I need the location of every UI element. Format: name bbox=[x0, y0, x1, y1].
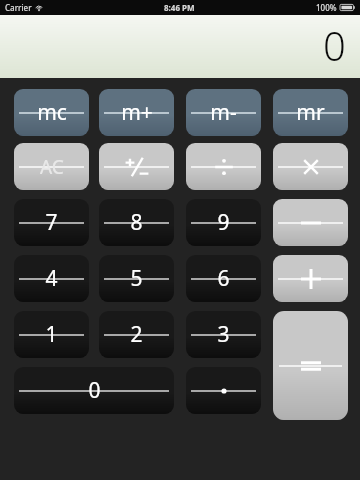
button[interactable]: 3 bbox=[186, 311, 261, 358]
staticText: 3 bbox=[217, 320, 230, 349]
button[interactable]: Divide bbox=[186, 143, 261, 190]
staticText: mr bbox=[296, 98, 325, 127]
button[interactable]: 2 bbox=[99, 311, 174, 358]
staticText: AC bbox=[40, 154, 64, 180]
staticText: m+ bbox=[121, 98, 153, 127]
staticText: mc bbox=[37, 98, 67, 127]
button[interactable]: 9 bbox=[186, 199, 261, 246]
button[interactable]: 6 bbox=[186, 255, 261, 302]
staticText: 5 bbox=[130, 264, 143, 293]
staticText: 0 bbox=[323, 18, 346, 72]
staticText: 100% bbox=[316, 2, 337, 13]
staticText: 6 bbox=[217, 264, 230, 293]
button[interactable]: 7 bbox=[14, 199, 89, 246]
button[interactable]: 0 bbox=[14, 367, 174, 414]
button[interactable]: Multiply bbox=[273, 143, 348, 190]
button[interactable]: All clear bbox=[14, 143, 89, 190]
button[interactable]: 5 bbox=[99, 255, 174, 302]
button[interactable]: mr bbox=[273, 89, 348, 136]
staticText: 1 bbox=[45, 320, 58, 349]
button[interactable]: m+ bbox=[99, 89, 174, 136]
button[interactable]: 1 bbox=[14, 311, 89, 358]
button[interactable]: Add bbox=[273, 255, 348, 302]
staticText: 8:46 PM bbox=[164, 2, 195, 13]
button[interactable]: Subtract bbox=[273, 199, 348, 246]
button[interactable]: Decimal point bbox=[186, 367, 261, 414]
button[interactable]: Plus minus sign bbox=[99, 143, 174, 190]
staticText: 7 bbox=[45, 208, 58, 237]
button[interactable]: 8 bbox=[99, 199, 174, 246]
button[interactable]: mc bbox=[14, 89, 89, 136]
staticText: m- bbox=[210, 98, 237, 127]
button[interactable]: m- bbox=[186, 89, 261, 136]
staticText: 8 bbox=[130, 208, 143, 237]
staticText: Carrier bbox=[5, 2, 32, 13]
button[interactable]: Equals bbox=[273, 311, 348, 420]
staticText: 2 bbox=[130, 320, 143, 349]
button[interactable]: 4 bbox=[14, 255, 89, 302]
staticText: 4 bbox=[45, 264, 58, 293]
staticText: 0 bbox=[88, 376, 101, 405]
staticText: 9 bbox=[217, 208, 230, 237]
